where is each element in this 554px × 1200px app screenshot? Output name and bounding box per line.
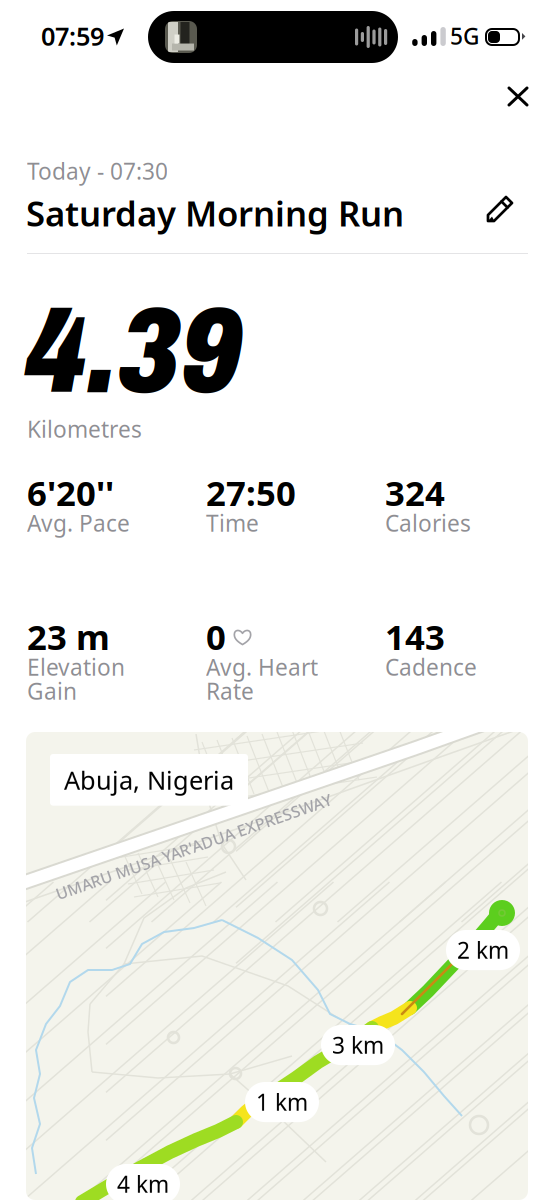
- staticText: Elevation: [27, 652, 125, 682]
- staticText: Cadence: [385, 652, 477, 682]
- staticText: 324: [385, 469, 445, 515]
- staticText: 4.39: [25, 287, 243, 418]
- staticText: Abuja, Nigeria: [64, 763, 234, 797]
- staticText: 27:50: [206, 469, 296, 515]
- staticText: 0: [206, 613, 226, 659]
- staticText: Time: [206, 508, 259, 538]
- staticText: 23 m: [27, 613, 110, 659]
- staticText: Avg. Pace: [27, 508, 130, 538]
- staticText: 4 km: [117, 1169, 169, 1199]
- staticText: 07:59: [41, 19, 104, 53]
- staticText: Saturday Morning Run: [26, 190, 404, 236]
- staticText: 143: [385, 613, 445, 659]
- staticText: Today - 07:30: [27, 156, 168, 186]
- staticText: Avg. Heart: [206, 652, 318, 682]
- staticText: 5G: [450, 21, 479, 51]
- staticText: 1 km: [256, 1087, 308, 1117]
- staticText: Kilometres: [27, 414, 142, 444]
- staticText: UMARU MUSA YAR'ADUA EXPRESSWAY: [48, 836, 339, 857]
- staticText: 6'20'': [27, 469, 114, 515]
- staticText: 2 km: [457, 935, 509, 965]
- staticText: Rate: [206, 676, 254, 706]
- button[interactable]: Close: [495, 74, 541, 119]
- staticText: Calories: [385, 508, 471, 538]
- staticText: Gain: [27, 676, 77, 706]
- staticText: 3 km: [332, 1030, 384, 1060]
- button[interactable]: Edit: [480, 189, 520, 229]
